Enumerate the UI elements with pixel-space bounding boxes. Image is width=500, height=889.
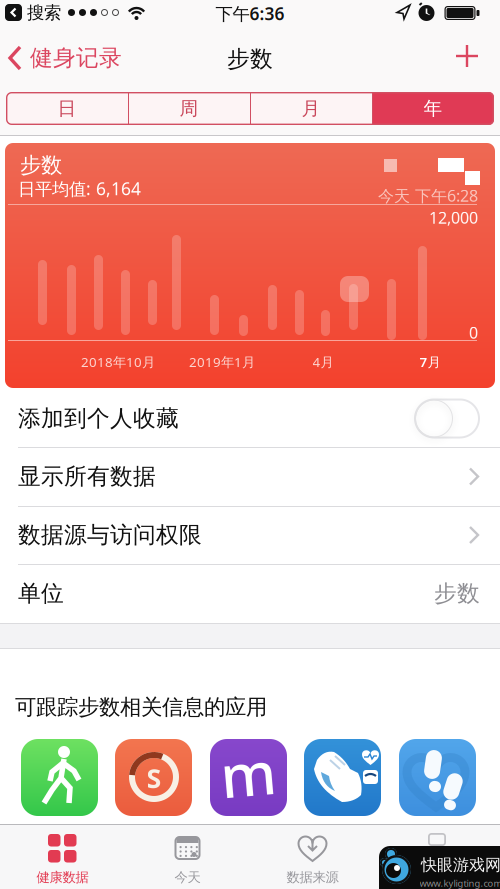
button[interactable]: 添加 xyxy=(456,45,478,67)
staticText: 今天 xyxy=(174,869,200,885)
button[interactable]: 周 xyxy=(128,92,250,125)
staticText: 12,000 xyxy=(429,207,478,228)
button[interactable]: 医疗急救卡 xyxy=(375,824,500,889)
staticText: 可跟踪步数相关信息的应用 xyxy=(15,694,267,720)
button[interactable]: 添加到个人收藏 xyxy=(0,390,500,447)
staticText: 年 xyxy=(423,97,442,120)
staticText: 步数 xyxy=(20,152,62,178)
staticText: 0 xyxy=(469,322,478,343)
staticText: 步数 xyxy=(227,45,273,73)
button[interactable]: 步行应用 xyxy=(21,739,98,816)
staticText: 步数 xyxy=(434,580,480,607)
staticText: 今天 下午6:28 xyxy=(378,185,478,206)
staticText: 7月 xyxy=(419,353,440,371)
button[interactable]: 年 xyxy=(372,92,494,125)
staticText: 健身记录 xyxy=(30,44,122,72)
button[interactable]: 月 xyxy=(250,92,372,125)
staticText: 日平均值: 6,164 xyxy=(18,177,141,200)
staticText: 单位 xyxy=(18,580,64,607)
staticText: 健康数据 xyxy=(36,869,88,885)
staticText: S xyxy=(146,760,161,796)
staticText: 月 xyxy=(301,97,320,120)
button[interactable]: 跑步应用 xyxy=(304,739,381,816)
button[interactable]: 日 xyxy=(6,92,128,125)
button[interactable]: Sweatcoin xyxy=(115,739,192,816)
staticText: 日 xyxy=(57,97,76,120)
staticText: 显示所有数据 xyxy=(18,463,156,490)
staticText: www.kyligting.com xyxy=(419,877,500,889)
button[interactable]: 显示所有数据 xyxy=(0,447,500,506)
button[interactable]: 数据源与访问权限 xyxy=(0,506,500,564)
button[interactable]: 今天 xyxy=(125,824,250,889)
button[interactable]: Moves xyxy=(210,739,287,816)
staticText: 下午6:36 xyxy=(215,2,284,25)
staticText: 数据源与访问权限 xyxy=(18,521,202,549)
button[interactable]: 数据来源 xyxy=(250,824,375,889)
button[interactable]: 单位 xyxy=(0,564,500,623)
staticText: 搜索 xyxy=(27,2,61,23)
staticText: 添加到个人收藏 xyxy=(18,405,179,432)
staticText: 2018年10月 xyxy=(81,353,155,371)
staticText: 4月 xyxy=(312,353,333,371)
button[interactable]: 计步应用 xyxy=(399,739,476,816)
staticText: 2019年1月 xyxy=(189,353,255,371)
staticText: 快眼游戏网 xyxy=(421,855,500,875)
staticText: 周 xyxy=(179,97,198,120)
button[interactable]: 健身记录 xyxy=(7,42,122,74)
button[interactable]: 健康数据 xyxy=(0,824,125,889)
staticText: 数据来源 xyxy=(286,869,338,885)
staticText: m xyxy=(220,734,276,812)
